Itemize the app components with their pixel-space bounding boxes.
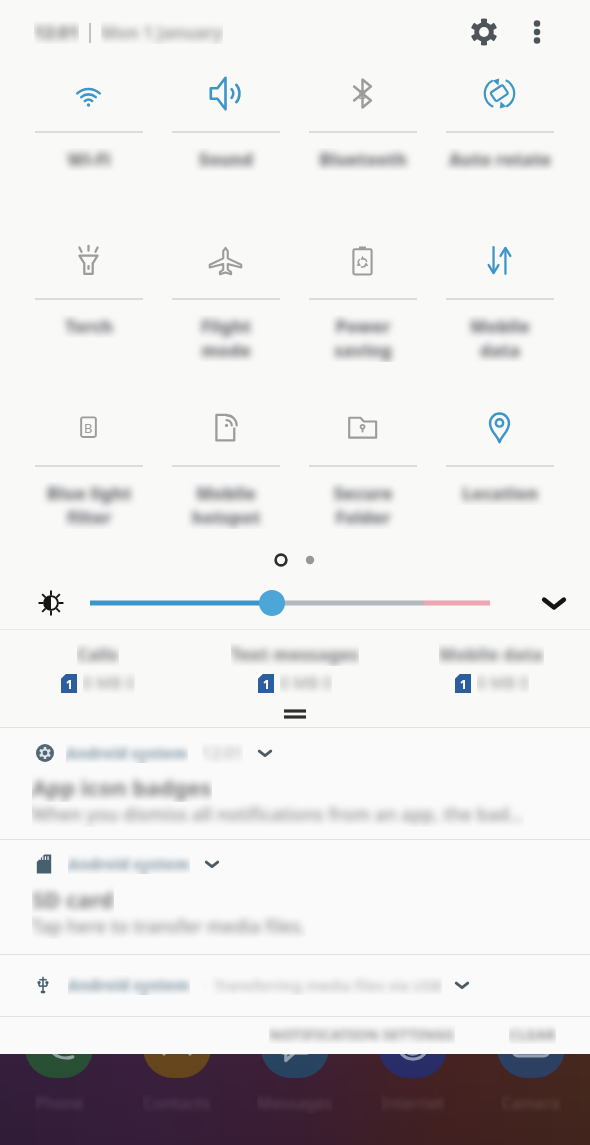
staticText: App icon badges (32, 772, 212, 802)
staticText: 1 (460, 676, 467, 692)
staticText: Blue light filter (26, 482, 152, 529)
button[interactable]: More options (514, 9, 560, 55)
staticText: 0 MB 0 (83, 672, 135, 694)
staticText: Bluetooth (300, 148, 426, 171)
staticText: Mon 1 January (101, 21, 223, 44)
staticText: Mobile data (437, 315, 563, 362)
staticText: Calls (77, 643, 119, 666)
button[interactable]: Mobile hotspot (157, 396, 294, 548)
button[interactable]: Expand quick settings (532, 581, 576, 625)
staticText: CLEAR (509, 1024, 556, 1044)
staticText: 0 MB 0 (477, 672, 529, 694)
staticText: Internet (381, 1092, 445, 1114)
staticText: Auto rotate (437, 148, 563, 171)
button[interactable]: Calls (0, 640, 196, 702)
staticText: 1 (263, 676, 270, 692)
staticText: Text messages (231, 643, 359, 666)
staticText: Android system (68, 854, 190, 874)
staticText: B (84, 419, 93, 437)
staticText: Secure Folder (300, 482, 426, 529)
staticText: Phone (35, 1092, 84, 1114)
button[interactable]: B (294, 62, 431, 214)
button[interactable]: Flight mode (157, 229, 294, 381)
button[interactable]: Phone (25, 1000, 93, 1114)
button[interactable]: Contacts (143, 1000, 211, 1114)
staticText: Mobile hotspot (163, 482, 289, 529)
staticText: 12:01 (34, 21, 79, 44)
button[interactable]: Auto rotate (431, 62, 568, 214)
button[interactable]: CLEAR (497, 1018, 568, 1050)
staticText: Tap here to transfer media files. (32, 914, 306, 939)
staticText: Torch (26, 315, 152, 338)
button[interactable]: Android system (0, 955, 590, 1015)
staticText: NOTIFICATION SETTINGS (269, 1024, 455, 1044)
button[interactable]: Sound (157, 62, 294, 214)
button[interactable]: Android system (0, 728, 590, 839)
button[interactable]: Location (431, 396, 568, 548)
staticText: When you dismiss all notifications from … (32, 802, 524, 827)
staticText: SD card (32, 884, 114, 914)
staticText: Sound (163, 148, 289, 171)
button[interactable]: Torch (20, 229, 157, 381)
staticText: Android system (68, 975, 190, 995)
staticText: Power saving (300, 315, 426, 362)
staticText: Contacts (143, 1092, 211, 1114)
button[interactable]: Camera (497, 1000, 565, 1114)
staticText: Camera (501, 1092, 561, 1114)
button[interactable]: Wi-Fi (20, 62, 157, 214)
button[interactable]: Internet (379, 1000, 447, 1114)
button[interactable]: B (20, 396, 157, 548)
staticText: · Transferring media files via USB (202, 975, 442, 995)
staticText: 12:01 (202, 742, 243, 764)
staticText: 1 (66, 676, 73, 692)
staticText: B (358, 85, 367, 103)
staticText: Flight mode (163, 315, 289, 362)
button[interactable]: Text messages (196, 640, 393, 702)
button[interactable]: Mobile data (431, 229, 568, 381)
staticText: Messages (257, 1092, 333, 1114)
button[interactable]: Mobile data (393, 640, 590, 702)
button[interactable]: Secure Folder (294, 396, 431, 548)
button[interactable]: Power saving (294, 229, 431, 381)
staticText: Location (437, 482, 563, 505)
staticText: 0 MB 0 (280, 672, 332, 694)
staticText: Mobile data (439, 643, 544, 666)
button[interactable]: Android system (0, 840, 590, 953)
button[interactable]: NOTIFICATION SETTINGS (257, 1018, 467, 1050)
button[interactable]: Settings (461, 9, 507, 55)
staticText: Android system (66, 743, 188, 763)
staticText: Wi-Fi (26, 148, 152, 171)
button[interactable]: Messages (257, 1000, 333, 1114)
